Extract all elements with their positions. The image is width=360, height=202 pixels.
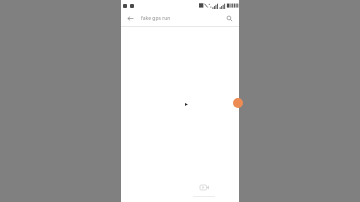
button[interactable]: Search (224, 13, 235, 24)
staticText: fake gps run (141, 15, 171, 22)
button[interactable]: Back (125, 13, 136, 24)
button[interactable]: Action button (233, 98, 243, 108)
button[interactable]: fake gps run (141, 11, 220, 26)
